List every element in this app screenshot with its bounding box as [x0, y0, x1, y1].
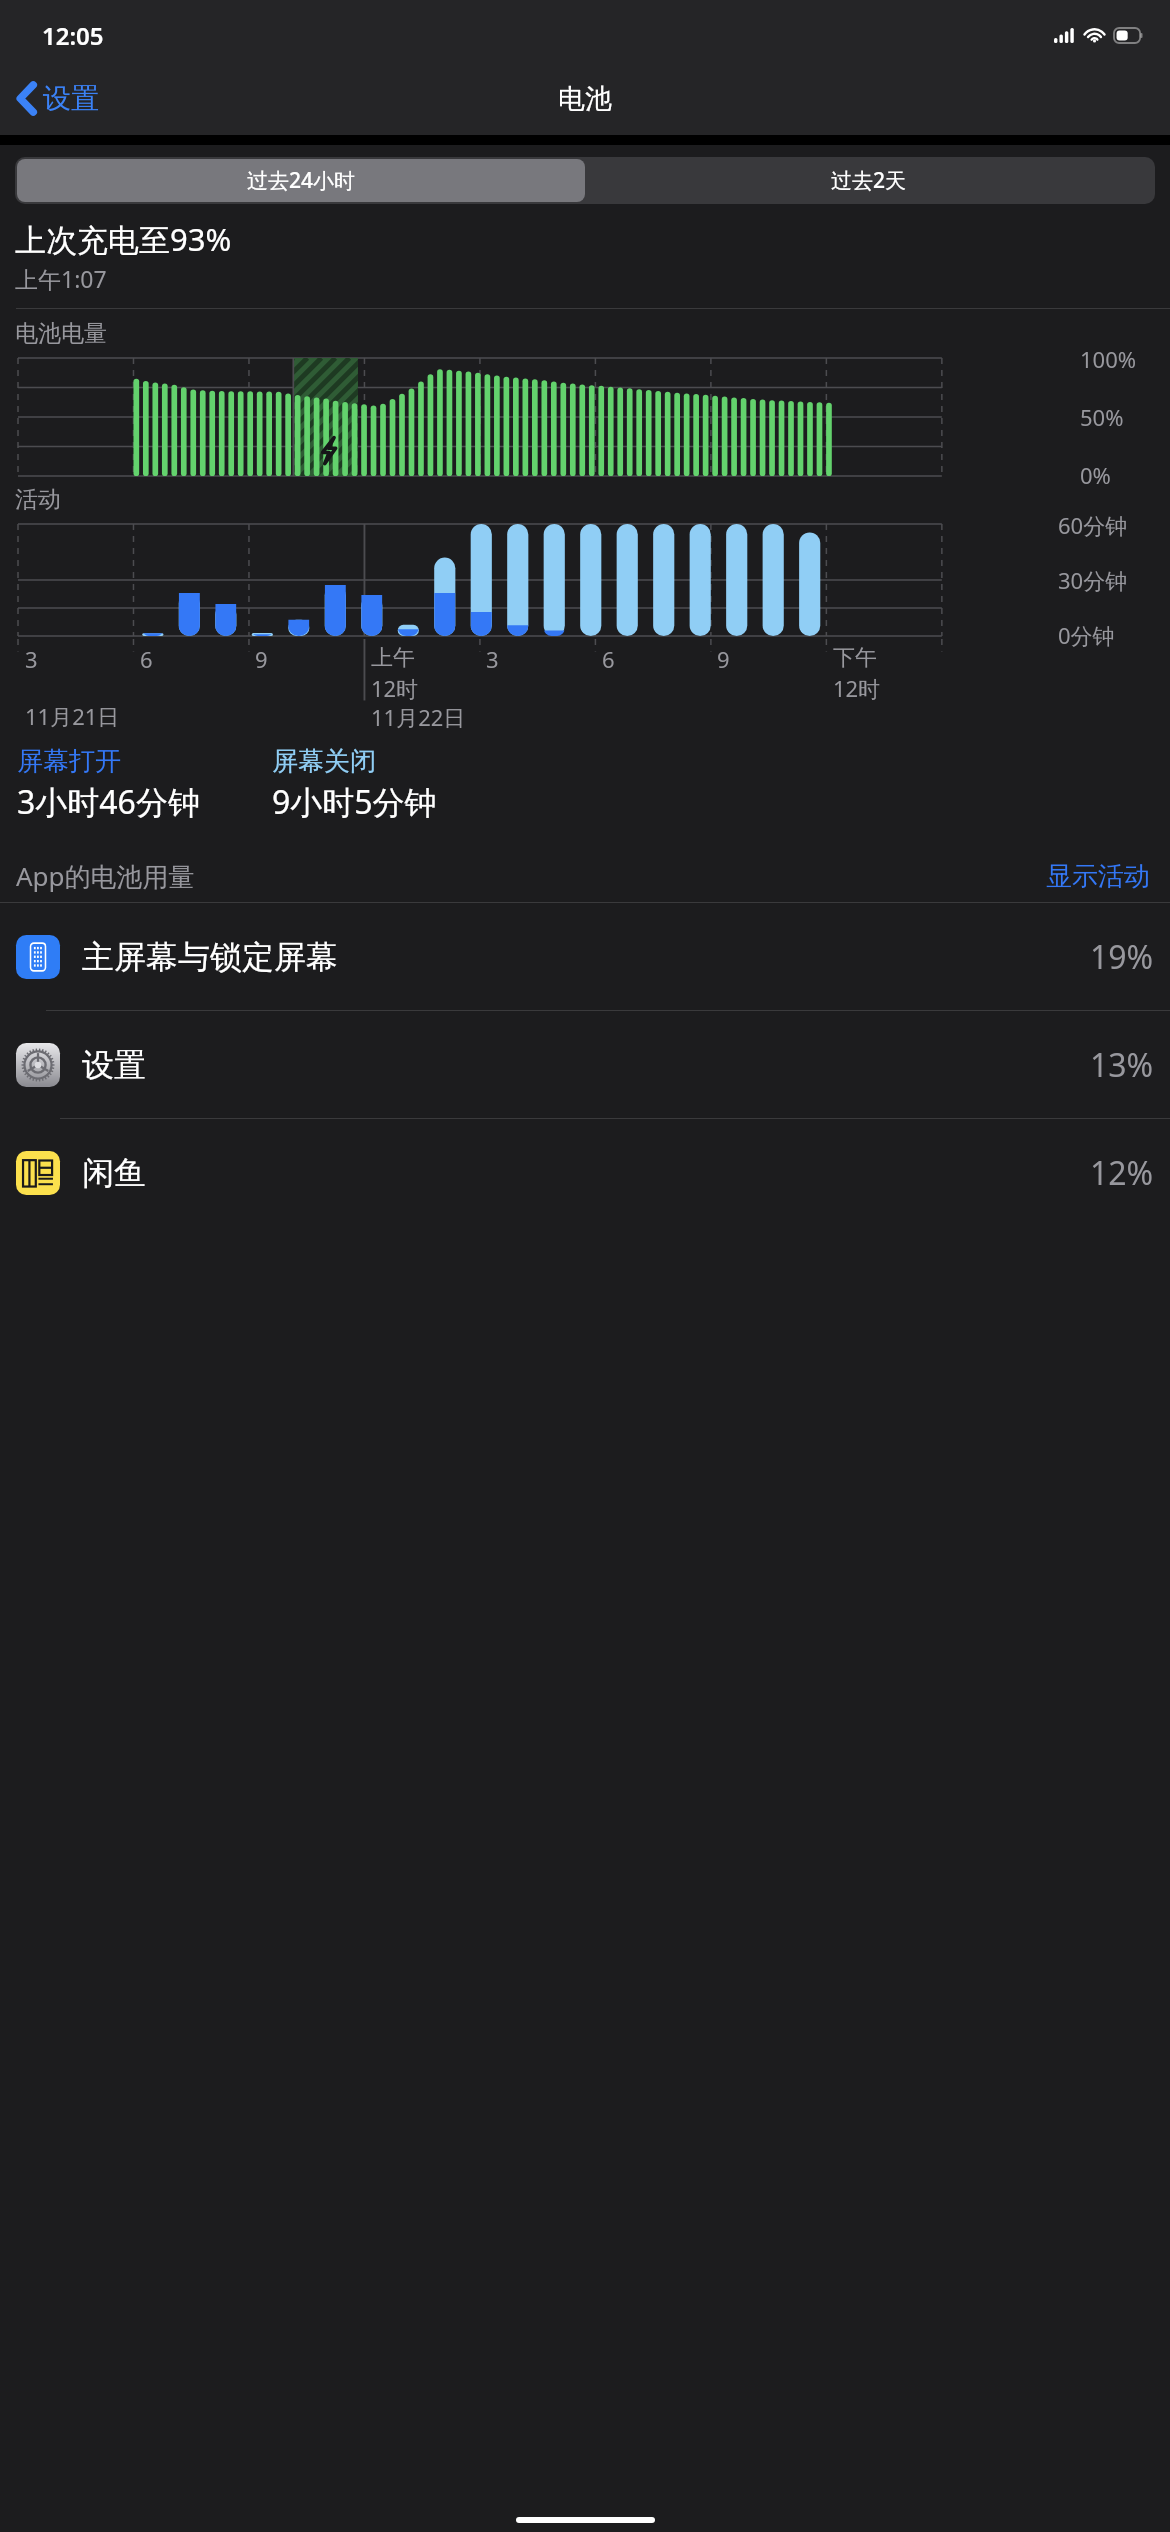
button[interactable]: 设置	[12, 73, 105, 124]
staticText: 12%	[1090, 1151, 1154, 1195]
staticText: 过去24小时	[247, 166, 356, 195]
button[interactable]: 过去2天	[585, 159, 1153, 202]
staticText: 6	[140, 644, 153, 674]
staticText: 活动	[15, 485, 61, 514]
staticText: 11月22日	[371, 702, 466, 732]
staticText: 6	[602, 644, 615, 674]
staticText: 100%	[1080, 344, 1137, 374]
staticText: 设置	[43, 81, 99, 116]
staticText: 0%	[1080, 460, 1111, 490]
staticText: App的电池用量	[16, 858, 195, 894]
staticText: 30分钟	[1058, 565, 1128, 595]
staticText: 13%	[1090, 1043, 1154, 1087]
staticText: 9小时5分钟	[272, 780, 437, 824]
staticText: 屏幕关闭	[272, 745, 376, 778]
button[interactable]: 显示活动	[1042, 856, 1154, 897]
staticText: 19%	[1090, 935, 1154, 979]
staticText: 电池电量	[15, 319, 107, 348]
staticText: 11月21日	[25, 701, 120, 731]
button[interactable]: 设置	[0, 1011, 1170, 1119]
staticText: 9	[717, 644, 730, 674]
staticText: 闲鱼	[82, 1153, 146, 1193]
staticText: 屏幕打开	[17, 745, 121, 778]
staticText: 50%	[1080, 402, 1124, 432]
staticText: 过去2天	[831, 166, 907, 195]
staticText: 上次充电至93%	[15, 218, 232, 260]
staticText: 主屏幕与锁定屏幕	[82, 937, 338, 977]
staticText: 下午 12时	[833, 644, 881, 703]
staticText: 12:05	[42, 19, 104, 52]
staticText: 上午1:07	[15, 263, 107, 294]
button[interactable]: 闲鱼	[0, 1119, 1170, 1226]
button[interactable]: 过去24小时	[17, 159, 585, 202]
staticText: 3	[25, 644, 38, 674]
staticText: 电池	[558, 82, 612, 116]
staticText: 上午 12时	[371, 644, 419, 703]
button[interactable]: 主屏幕与锁定屏幕	[0, 903, 1170, 1011]
staticText: 0分钟	[1058, 620, 1115, 650]
staticText: 显示活动	[1046, 860, 1150, 893]
staticText: 设置	[82, 1045, 146, 1085]
staticText: 3小时46分钟	[17, 780, 200, 824]
staticText: 60分钟	[1058, 510, 1128, 540]
staticText: 3	[486, 644, 499, 674]
staticText: 9	[255, 644, 268, 674]
